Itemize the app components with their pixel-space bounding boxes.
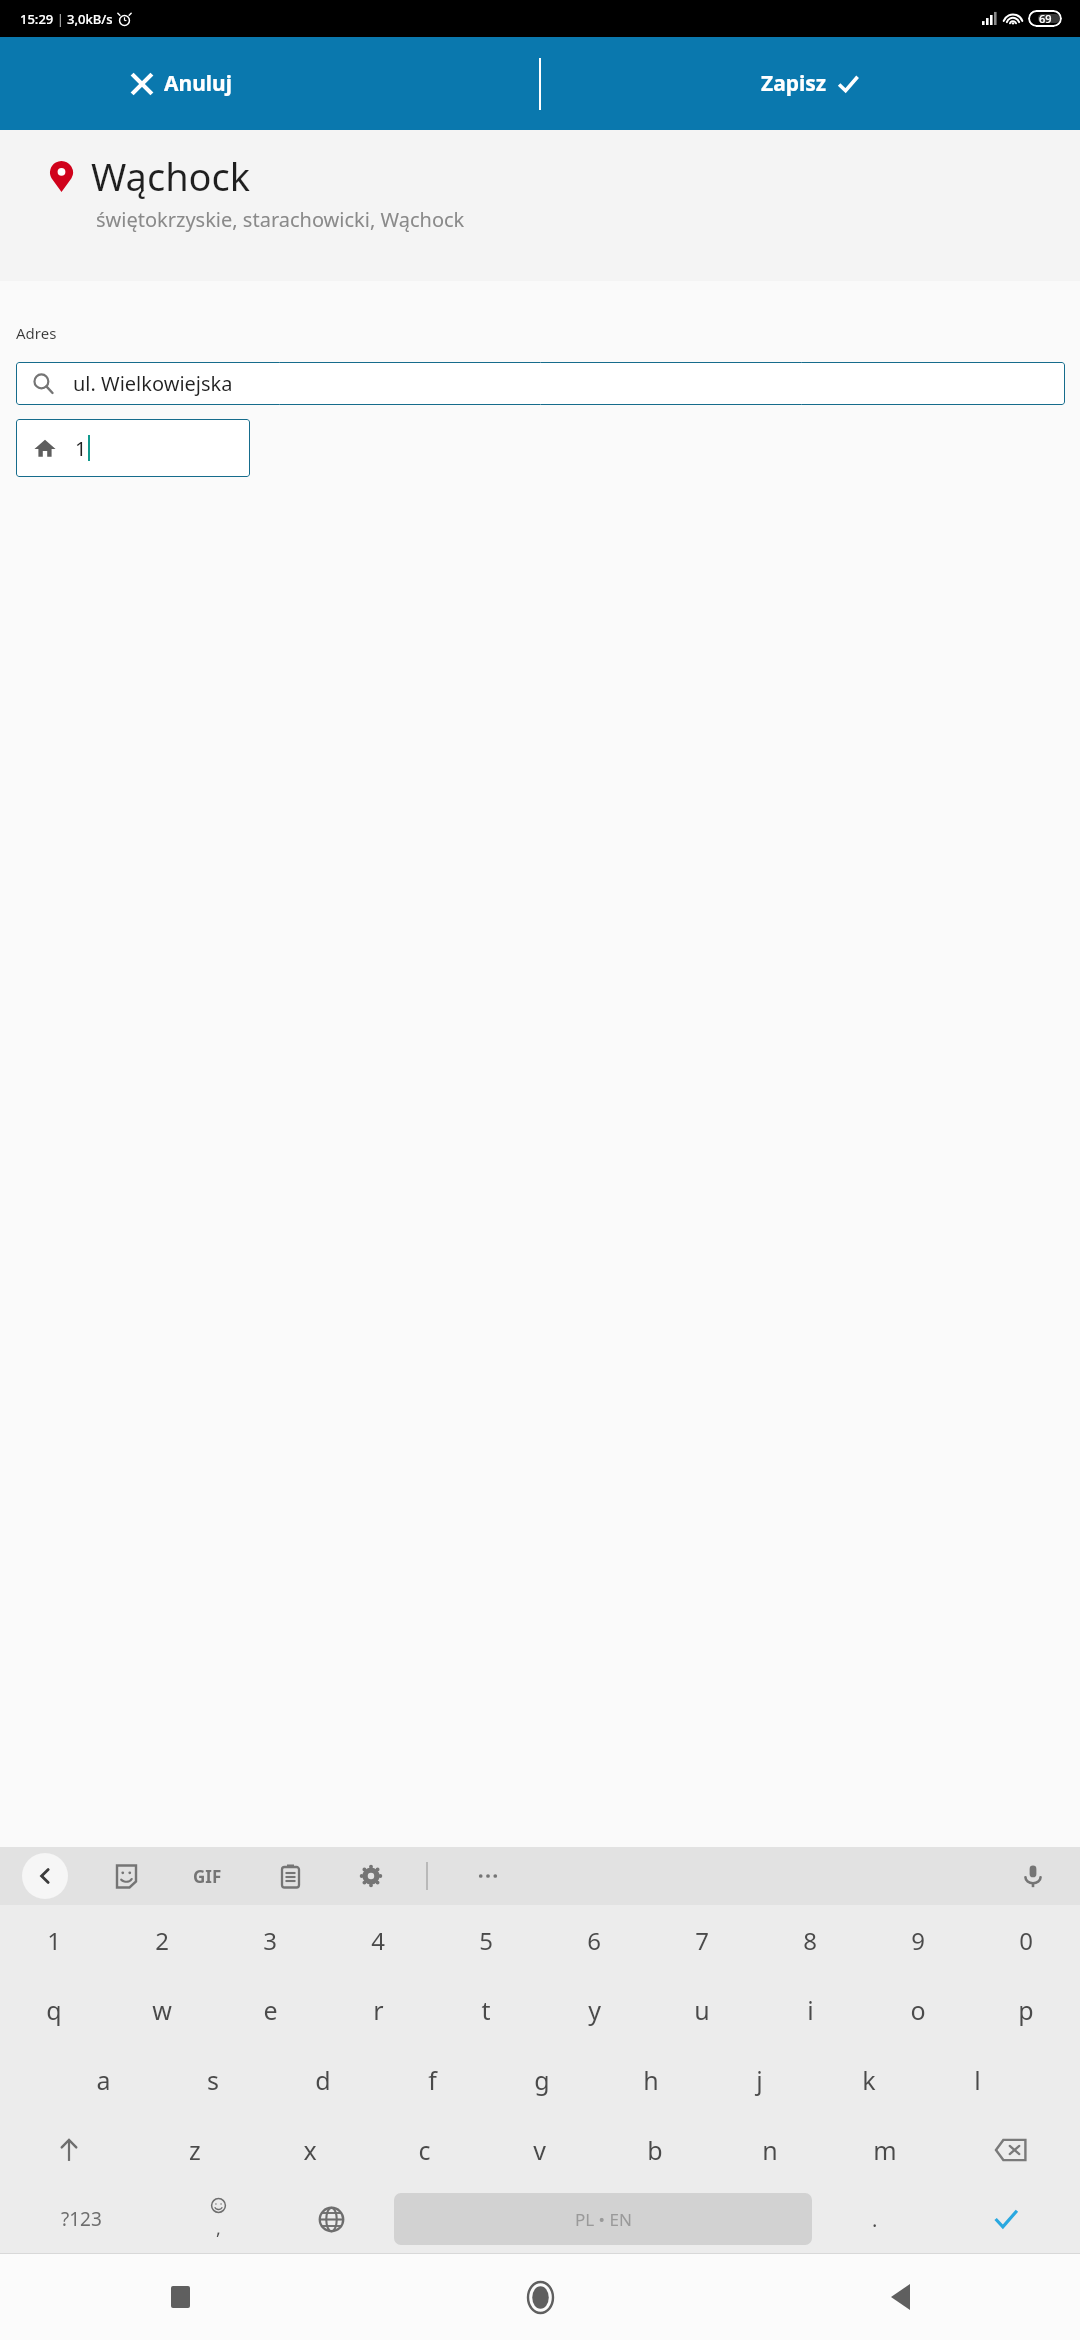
button[interactable]: y	[540, 1975, 648, 2045]
button[interactable]: b	[597, 2115, 712, 2185]
staticText: świętokrzyskie, starachowicki, Wąchock	[96, 206, 465, 233]
staticText: t	[481, 1993, 491, 2027]
button[interactable]: z	[137, 2115, 252, 2185]
staticText: b	[647, 2133, 663, 2167]
button[interactable]: v	[482, 2115, 597, 2185]
staticText: 7	[695, 1924, 709, 1957]
button[interactable]: Enter	[931, 2185, 1080, 2253]
button[interactable]: p	[972, 1975, 1080, 2045]
button[interactable]: 2	[108, 1905, 216, 1975]
button[interactable]: k	[814, 2045, 923, 2115]
button[interactable]: Change language	[275, 2185, 388, 2253]
button[interactable]: j	[705, 2045, 814, 2115]
staticText: q	[46, 1993, 62, 2027]
staticText: 6	[587, 1924, 601, 1957]
button[interactable]: Anuluj	[0, 37, 360, 130]
staticText: ,	[216, 2216, 221, 2241]
button[interactable]: ul. Wielkowiejska	[16, 362, 1065, 405]
staticText: e	[263, 1993, 278, 2027]
staticText: 1	[75, 435, 87, 462]
staticText: ?123	[61, 2206, 102, 2232]
staticText: .	[872, 2206, 878, 2233]
button[interactable]: Shift	[0, 2115, 137, 2185]
staticText: 9	[911, 1924, 925, 1957]
button[interactable]: Back	[720, 2254, 1080, 2340]
button[interactable]: .	[818, 2185, 931, 2253]
staticText: 1	[47, 1924, 61, 1957]
button[interactable]: More options	[466, 1854, 510, 1898]
staticText: p	[1018, 1993, 1034, 2027]
staticText: Adres	[16, 323, 57, 343]
button[interactable]: i	[756, 1975, 864, 2045]
button[interactable]: Settings	[350, 1855, 392, 1897]
button[interactable]: Backspace	[942, 2115, 1080, 2185]
button[interactable]: s	[158, 2045, 268, 2115]
button[interactable]: Home	[360, 2254, 720, 2340]
staticText: a	[96, 2063, 111, 2097]
button[interactable]: t	[432, 1975, 540, 2045]
staticText: 5	[479, 1924, 493, 1957]
button[interactable]: g	[487, 2045, 596, 2115]
button[interactable]: Recent apps	[0, 2254, 360, 2340]
staticText: Anuluj	[164, 69, 232, 98]
button[interactable]: 5	[432, 1905, 540, 1975]
button[interactable]: h	[596, 2045, 705, 2115]
staticText: Wąchock	[91, 150, 251, 202]
button[interactable]: d	[268, 2045, 378, 2115]
staticText: h	[643, 2063, 659, 2097]
staticText: n	[762, 2133, 778, 2167]
button[interactable]: x	[252, 2115, 367, 2185]
button[interactable]: 0	[972, 1905, 1080, 1975]
staticText: 8	[803, 1924, 817, 1957]
staticText: u	[694, 1993, 710, 2027]
staticText: s	[207, 2063, 219, 2097]
button[interactable]: o	[864, 1975, 972, 2045]
button[interactable]: 4	[324, 1905, 432, 1975]
button[interactable]: Space	[394, 2193, 812, 2245]
staticText: x	[303, 2133, 317, 2167]
button[interactable]: l	[923, 2045, 1032, 2115]
staticText: d	[315, 2063, 331, 2097]
button[interactable]: 8	[756, 1905, 864, 1975]
button[interactable]: 1	[16, 419, 250, 477]
staticText: j	[756, 2063, 763, 2097]
button[interactable]: 6	[540, 1905, 648, 1975]
button[interactable]: Emoji	[162, 2185, 275, 2253]
button[interactable]: e	[216, 1975, 324, 2045]
button[interactable]: a	[48, 2045, 158, 2115]
staticText: GIF	[193, 1865, 222, 1888]
button[interactable]: w	[108, 1975, 216, 2045]
button[interactable]: Stickers	[106, 1856, 146, 1896]
button[interactable]: 1	[0, 1905, 108, 1975]
staticText: 15:29	[20, 10, 54, 28]
staticText: w	[152, 1993, 172, 2027]
button[interactable]: m	[827, 2115, 942, 2185]
button[interactable]: 9	[864, 1905, 972, 1975]
button[interactable]: 3	[216, 1905, 324, 1975]
staticText: 2	[155, 1924, 169, 1957]
button[interactable]: q	[0, 1975, 108, 2045]
button[interactable]: c	[367, 2115, 482, 2185]
staticText: 69	[1039, 11, 1052, 26]
staticText: l	[974, 2063, 981, 2097]
button[interactable]: GIF	[184, 1853, 230, 1899]
staticText: 3,0kB/s	[67, 10, 113, 28]
staticText: 4	[371, 1924, 385, 1957]
button[interactable]: Zapisz	[540, 37, 1080, 130]
staticText: |	[57, 11, 64, 27]
staticText: 0	[1019, 1924, 1033, 1957]
button[interactable]: u	[648, 1975, 756, 2045]
staticText: v	[533, 2133, 546, 2167]
button[interactable]: 7	[648, 1905, 756, 1975]
staticText: y	[588, 1993, 601, 2027]
button[interactable]: r	[324, 1975, 432, 2045]
button[interactable]: Voice input	[1010, 1853, 1056, 1899]
button[interactable]: Back	[22, 1853, 68, 1899]
staticText: z	[189, 2133, 201, 2167]
button[interactable]: ?123	[0, 2185, 162, 2253]
staticText: o	[910, 1993, 926, 2027]
button[interactable]: f	[378, 2045, 487, 2115]
button[interactable]: Clipboard	[270, 1856, 310, 1896]
button[interactable]: n	[712, 2115, 827, 2185]
staticText: Zapisz	[761, 69, 827, 98]
